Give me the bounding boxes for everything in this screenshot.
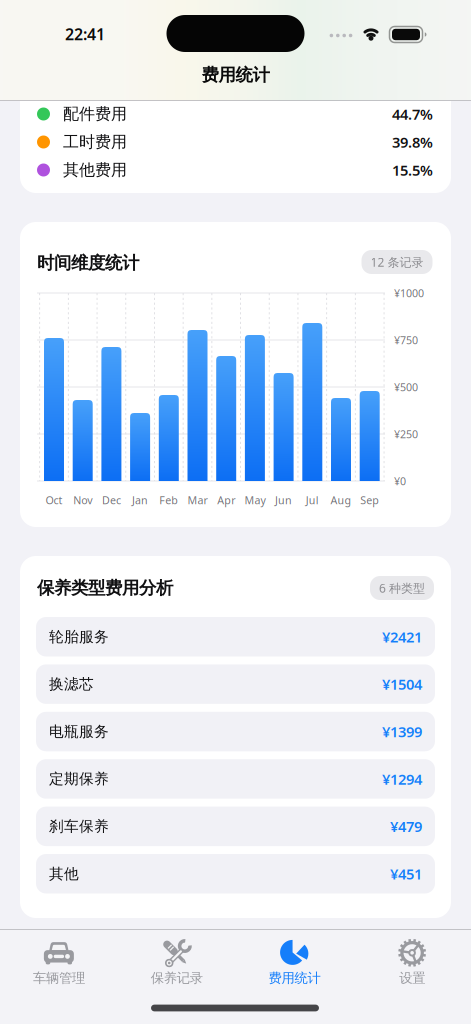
staticText: 车辆管理 — [33, 970, 85, 986]
staticText: ¥750 — [394, 333, 418, 347]
staticText: 定期保养 — [49, 770, 109, 788]
staticText: ¥1504 — [382, 674, 422, 694]
button[interactable]: 费用统计 — [235, 933, 353, 991]
staticText: Apr — [217, 493, 235, 507]
staticText: 6 种类型 — [379, 580, 425, 596]
staticText: 保养记录 — [151, 970, 203, 986]
staticText: Jun — [275, 493, 292, 507]
staticText: 刹车保养 — [49, 817, 109, 835]
staticText: May — [244, 493, 265, 507]
staticText: 配件费用 — [63, 104, 127, 124]
staticText: 15.5% — [392, 160, 433, 180]
staticText: 22:41 — [65, 23, 105, 45]
button[interactable]: 保养记录 — [118, 933, 236, 991]
staticText: 轮胎服务 — [49, 628, 109, 646]
staticText: 44.7% — [392, 104, 433, 124]
staticText: 其他 — [49, 865, 79, 883]
staticText: ¥0 — [394, 474, 406, 488]
staticText: ¥1294 — [382, 769, 422, 789]
staticText: 费用统计 — [201, 64, 269, 86]
staticText: ¥451 — [390, 864, 422, 883]
staticText: Aug — [330, 493, 351, 507]
staticText: Mar — [187, 493, 207, 507]
staticText: 39.8% — [392, 132, 433, 152]
staticText: ¥479 — [390, 817, 422, 836]
staticText: Jan — [132, 493, 148, 507]
staticText: 12 条记录 — [370, 254, 423, 270]
staticText: 时间维度统计 — [37, 252, 139, 274]
staticText: Jul — [306, 493, 319, 507]
staticText: 工时费用 — [63, 132, 127, 152]
staticText: Feb — [159, 493, 178, 507]
staticText: Sep — [360, 493, 379, 507]
staticText: 设置 — [399, 970, 425, 986]
staticText: 其他费用 — [63, 160, 127, 180]
staticText: ¥500 — [394, 380, 418, 394]
staticText: ¥250 — [394, 427, 418, 441]
button[interactable]: 设置 — [353, 933, 471, 991]
staticText: Dec — [102, 493, 121, 507]
staticText: ¥2421 — [382, 627, 422, 646]
staticText: Oct — [45, 493, 62, 507]
staticText: 保养类型费用分析 — [37, 577, 173, 599]
staticText: 电瓶服务 — [49, 722, 109, 740]
staticText: ¥1000 — [394, 286, 424, 300]
staticText: ¥1399 — [382, 722, 422, 741]
staticText: Nov — [73, 493, 92, 507]
staticText: 换滤芯 — [49, 675, 94, 693]
button[interactable]: 车辆管理 — [0, 933, 118, 991]
staticText: 费用统计 — [268, 970, 320, 986]
